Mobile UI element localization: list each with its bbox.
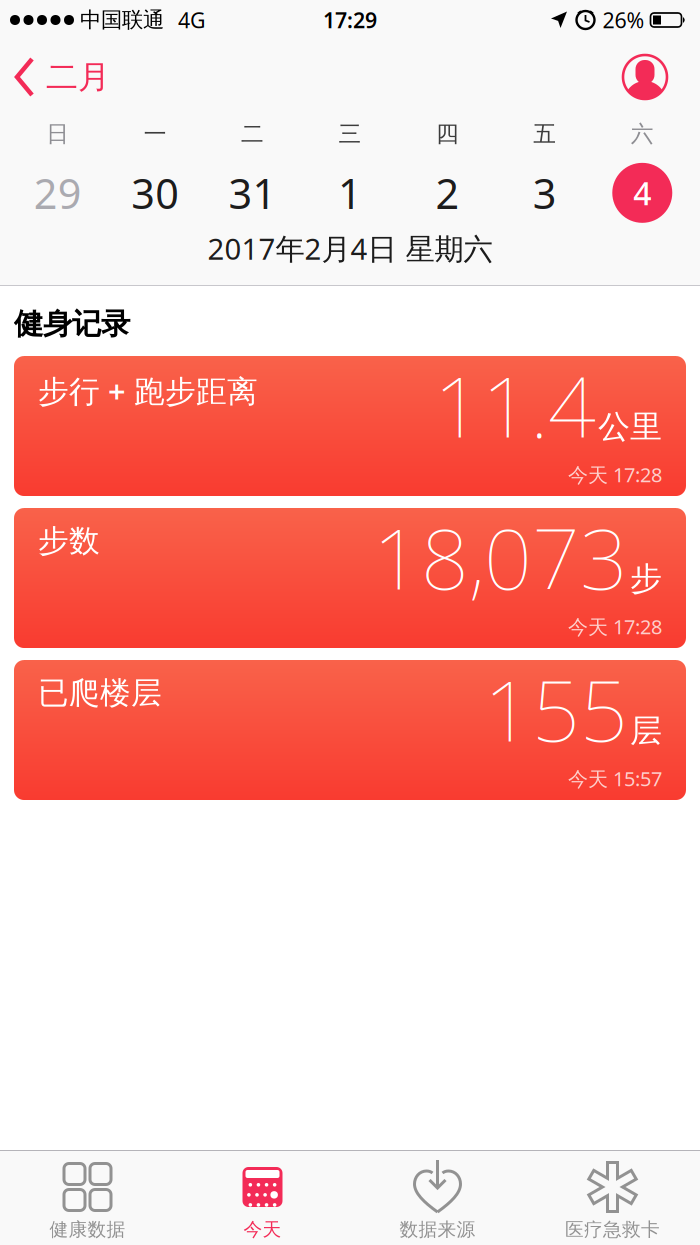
button[interactable]: 3 [496,165,593,220]
staticText: 已爬楼层 [38,674,162,712]
staticText: 层 [630,711,662,751]
staticText: 18,073 [373,501,628,613]
staticText: 二月 [46,57,110,97]
staticText: 公里 [598,407,662,447]
staticText: 医疗急救卡 [565,1218,660,1241]
button[interactable]: 二月 [14,57,110,97]
button[interactable]: 2 [399,165,496,220]
staticText: 今天 [243,1218,281,1241]
staticText: 4G [178,6,206,34]
staticText: 五 [533,120,556,148]
button[interactable]: 健康资料 [622,54,668,100]
staticText: 二 [241,120,264,148]
staticText: 今天 15:57 [568,765,662,792]
button[interactable]: 11.4 [14,356,686,496]
staticText: 六 [631,120,654,148]
staticText: 步数 [38,522,100,560]
staticText: 26% [602,6,644,34]
staticText: 3 [533,165,557,220]
staticText: 1 [338,165,362,220]
staticText: 一 [144,120,167,148]
button[interactable]: 18,073 [14,508,686,648]
button[interactable]: 数据来源 [350,1151,525,1241]
staticText: 步行 + 跑步距离 [38,370,258,411]
staticText: 四 [436,120,459,148]
button[interactable]: 医疗急救卡 [525,1151,700,1241]
staticText: 中国联通 [80,7,164,33]
staticText: 11.4 [434,349,596,461]
staticText: 17:29 [323,6,377,34]
button[interactable]: 31 [204,165,301,220]
staticText: 数据来源 [399,1218,475,1241]
button[interactable]: 29 [9,165,106,220]
staticText: 2017年2月4日 星期六 [207,229,492,268]
staticText: 31 [229,165,277,220]
staticText: 健康数据 [49,1218,125,1241]
button[interactable]: 4 [594,163,691,223]
staticText: 今天 17:28 [568,461,662,488]
staticText: 29 [34,165,82,220]
staticText: 日 [46,120,69,148]
button[interactable]: 健康数据 [0,1151,175,1241]
button[interactable]: 1 [301,165,399,220]
button[interactable]: 30 [106,165,204,220]
staticText: 今天 17:28 [568,613,662,640]
staticText: 三 [338,120,361,148]
staticText: 2 [435,165,459,220]
staticText: 4 [633,172,651,214]
staticText: 155 [484,653,628,765]
button[interactable]: 今天 [175,1151,350,1241]
staticText: 健身记录 [14,306,130,342]
staticText: 步 [630,559,662,599]
staticText: 30 [131,165,179,220]
button[interactable]: 155 [14,660,686,800]
